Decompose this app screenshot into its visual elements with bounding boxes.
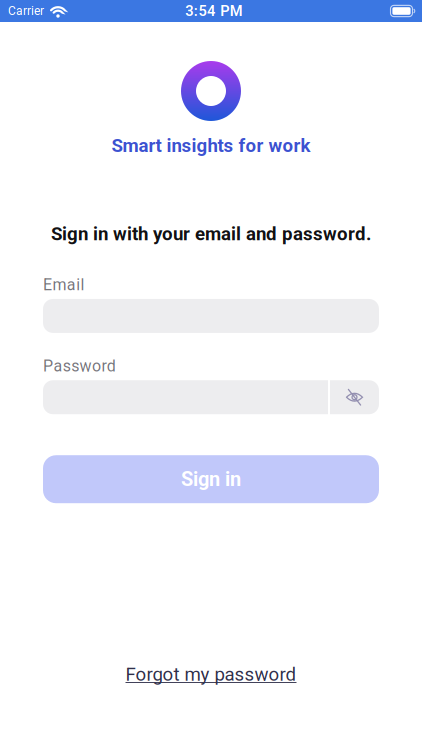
staticText: Forgot my password: [125, 664, 296, 685]
staticText: Carrier: [8, 4, 44, 18]
button[interactable]: Forgot my password: [125, 664, 296, 685]
staticText: Sign in: [181, 468, 241, 491]
button[interactable]: Sign in: [43, 455, 379, 503]
staticText: Password: [43, 357, 116, 375]
staticText: Sign in with your email and password.: [51, 223, 371, 245]
button[interactable]: Show password: [330, 380, 379, 414]
staticText: Email: [43, 276, 85, 294]
staticText: Smart insights for work: [111, 135, 310, 156]
staticText: 3:54 PM: [185, 3, 243, 19]
